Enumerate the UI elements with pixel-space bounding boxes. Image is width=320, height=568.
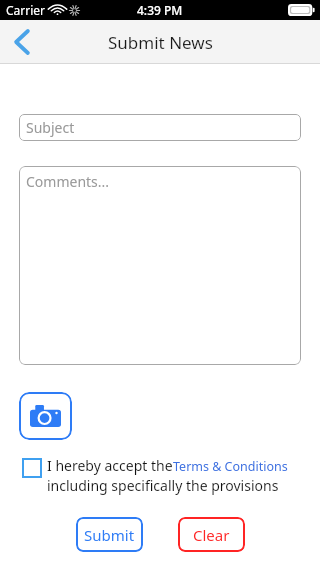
staticText: including specifically the provisions (47, 476, 279, 495)
staticText: Terms & Conditions (173, 458, 288, 475)
button[interactable]: I hereby accept the (22, 456, 310, 495)
staticText: Comments... (26, 172, 110, 191)
button[interactable]: Take photo (19, 392, 72, 440)
button[interactable]: Clear (178, 517, 245, 552)
button[interactable]: Back (0, 20, 44, 64)
button[interactable]: Comments... (19, 166, 301, 365)
button[interactable]: Subject (19, 114, 301, 141)
staticText: Clear (193, 525, 230, 545)
staticText: Subject (26, 118, 75, 137)
staticText: Submit News (108, 31, 213, 54)
staticText: Carrier (6, 2, 46, 18)
staticText: Submit (84, 525, 135, 545)
button[interactable]: Submit (76, 517, 143, 552)
staticText: 4:39 PM (137, 2, 183, 18)
staticText: I hereby accept the (47, 456, 173, 475)
